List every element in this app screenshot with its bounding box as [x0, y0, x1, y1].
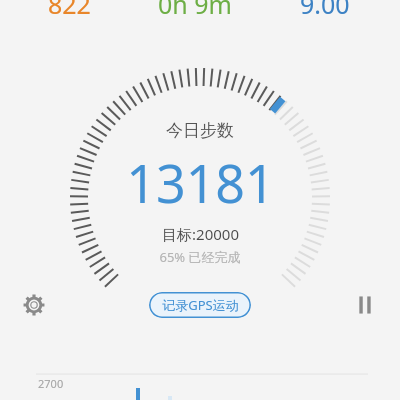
button[interactable]: 记录GPS运动	[149, 292, 251, 318]
staticText: 822	[48, 0, 91, 21]
staticText: 今日步数	[166, 120, 234, 141]
staticText: 65% 已经完成	[159, 248, 241, 266]
staticText: 9.00	[300, 0, 350, 21]
button[interactable]: Settings	[16, 287, 52, 323]
staticText: 记录GPS运动	[162, 296, 239, 314]
staticText: 0h 9m	[158, 0, 232, 21]
staticText: 目标:20000	[162, 224, 239, 244]
staticText: 2700	[38, 376, 64, 391]
button[interactable]: Pause	[347, 287, 383, 323]
staticText: 13181	[126, 147, 275, 218]
